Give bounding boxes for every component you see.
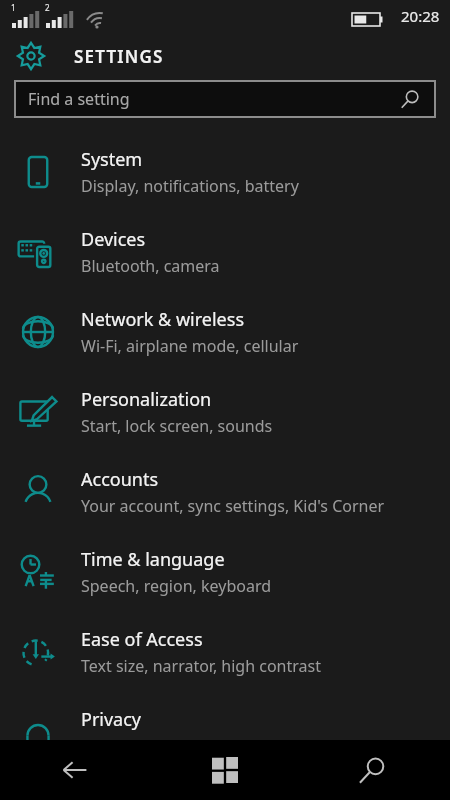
staticText: System [81,147,143,172]
staticText: Ease of Access [81,627,203,652]
staticText: Your account, sync settings, Kid's Corne… [81,495,385,517]
staticText: 2 [45,2,50,13]
other: Search [404,90,422,108]
button[interactable]: Devices [0,212,450,292]
staticText: Personalization [81,387,212,412]
staticText: Bluetooth, camera [81,255,220,277]
staticText: Start, lock screen, sounds [81,415,273,437]
button[interactable]: Search [300,740,450,800]
button[interactable]: Network & wireless [0,292,450,372]
staticText: Time & language [81,547,225,572]
staticText: Speech, region, keyboard [81,575,272,597]
button[interactable]: Time & language [0,532,450,612]
staticText: SETTINGS [74,45,164,68]
staticText: Text size, narrator, high contrast [81,655,321,677]
button[interactable]: Start [150,740,300,800]
staticText: Network & wireless [81,307,245,332]
button[interactable]: Back [0,740,150,800]
button[interactable]: Personalization [0,372,450,452]
button[interactable]: System [0,132,450,212]
staticText: Privacy [81,707,142,732]
staticText: Find a setting [28,88,130,110]
staticText: Devices [81,227,146,252]
staticText: Display, notifications, battery [81,175,299,197]
button[interactable]: Accounts [0,452,450,532]
staticText: Wi-Fi, airplane mode, cellular [81,335,299,357]
staticText: Location, camera [81,735,210,757]
button[interactable]: Privacy [0,692,450,772]
staticText: 1 [11,2,16,13]
button[interactable]: Find a setting [14,80,436,118]
staticText: 20:28 [401,6,440,26]
button[interactable]: Ease of Access [0,612,450,692]
staticText: Accounts [81,467,159,492]
